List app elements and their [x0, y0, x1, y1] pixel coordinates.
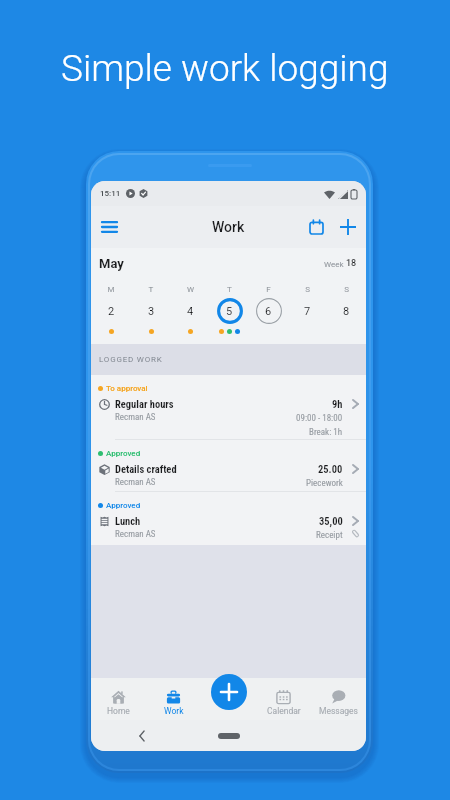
staticText: 4 [187, 305, 194, 318]
staticText: Lunch [115, 515, 141, 527]
staticText: 25.00 [318, 463, 343, 475]
staticText: S [327, 285, 366, 294]
staticText: Calendar [267, 706, 301, 716]
staticText: Approved [106, 449, 141, 458]
staticText: S [288, 285, 327, 294]
button[interactable]: 4 [171, 297, 210, 325]
staticText: T [210, 285, 249, 294]
staticText: Work [212, 219, 245, 235]
staticText: Home [107, 706, 130, 716]
staticText: Messages [319, 706, 358, 716]
staticText: Simple work logging [61, 47, 389, 90]
staticText: May [99, 256, 124, 271]
staticText: T [131, 285, 171, 294]
button[interactable]: Work [146, 678, 201, 720]
staticText: 09:00 - 18:00 [296, 413, 343, 424]
button[interactable]: Add entry [211, 674, 247, 710]
staticText: 3 [148, 305, 155, 318]
button[interactable]: Approved [91, 492, 366, 545]
staticText: Work [164, 706, 184, 716]
button[interactable]: 7 [288, 297, 327, 325]
staticText: W [171, 285, 210, 294]
button[interactable]: To approval [91, 375, 366, 439]
staticText: 2 [108, 305, 115, 318]
staticText: 9h [332, 398, 343, 410]
button[interactable]: 8 [327, 297, 366, 325]
button[interactable]: 2 [91, 297, 131, 325]
staticText: Receipt [316, 530, 343, 541]
staticText: 7 [304, 305, 311, 318]
staticText: Break: 1h [309, 427, 343, 438]
button[interactable]: 6 [249, 297, 288, 325]
button[interactable]: 3 [131, 297, 171, 325]
button[interactable]: Menu [94, 212, 124, 242]
staticText: M [91, 285, 131, 294]
button[interactable]: Add [333, 212, 363, 242]
button[interactable]: Approved [91, 440, 366, 491]
staticText: Recman AS [115, 477, 156, 488]
button[interactable]: Home [91, 678, 146, 720]
staticText: 18 [346, 258, 357, 269]
staticText: Week [324, 260, 346, 269]
staticText: Recman AS [115, 412, 156, 423]
staticText: Regular hours [115, 398, 174, 410]
button[interactable]: 5 [210, 297, 249, 325]
staticText: 5 [226, 305, 233, 318]
staticText: Approved [106, 501, 141, 510]
staticText: 6 [265, 305, 272, 318]
button[interactable]: Calendar [301, 212, 331, 242]
staticText: 8 [343, 305, 350, 318]
staticText: F [249, 285, 288, 294]
staticText: Recman AS [115, 529, 156, 540]
staticText: LOGGED WORK [99, 355, 163, 364]
staticText: To approval [106, 384, 148, 393]
staticText: 15:11 [100, 189, 121, 198]
button[interactable]: Calendar [256, 678, 311, 720]
button[interactable]: Messages [311, 678, 366, 720]
staticText: Details crafted [115, 463, 177, 475]
staticText: Piecework [306, 478, 343, 489]
staticText: 35,00 [319, 515, 343, 527]
